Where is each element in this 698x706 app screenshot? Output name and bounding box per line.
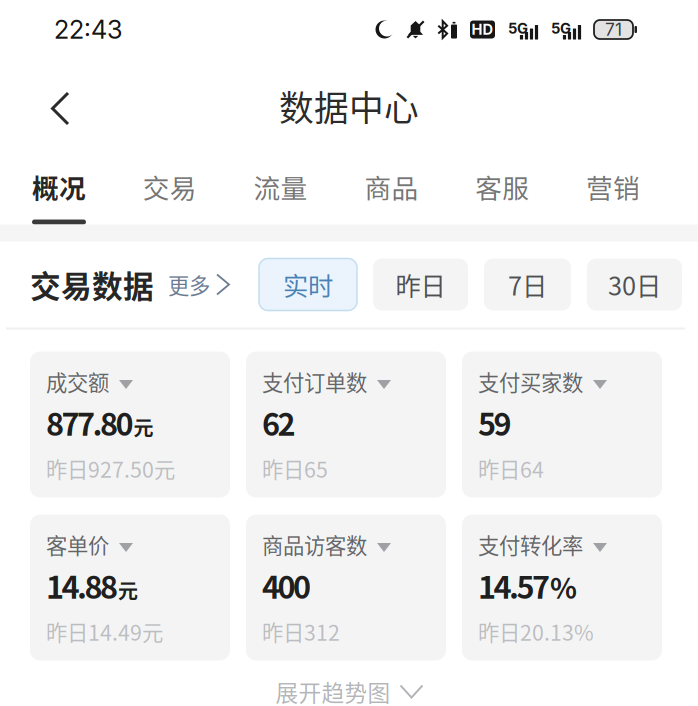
button[interactable]: 客服	[475, 147, 529, 224]
button[interactable]: 30日	[587, 258, 682, 310]
staticText: 商品访客数	[262, 529, 367, 560]
staticText: 昨日65	[262, 453, 328, 484]
button[interactable]: 客单价	[30, 514, 230, 660]
staticText: 14.88	[46, 563, 118, 608]
button[interactable]: 营销	[586, 147, 640, 224]
staticText: 877.80	[46, 400, 133, 445]
staticText: 昨日14.49元	[46, 616, 163, 647]
staticText: 昨日	[395, 266, 445, 303]
staticText: 交易数据	[30, 262, 154, 307]
staticText: 商品	[364, 167, 418, 206]
staticText: 成交额	[46, 366, 109, 397]
button[interactable]: 支付订单数	[246, 351, 446, 497]
staticText: 昨日20.13%	[478, 616, 594, 647]
staticText: 展开趋势图	[275, 675, 390, 706]
staticText: 数据中心	[279, 81, 419, 131]
button[interactable]: 流量	[254, 147, 308, 224]
staticText: 昨日312	[262, 616, 340, 647]
staticText: 支付转化率	[478, 529, 583, 560]
staticText: 营销	[586, 167, 640, 206]
button[interactable]: 更多	[154, 269, 229, 300]
button[interactable]: 交易	[143, 147, 197, 224]
staticText: 客单价	[46, 529, 109, 560]
button[interactable]: 支付买家数	[462, 351, 662, 497]
staticText: 元	[133, 413, 153, 442]
staticText: 昨日927.50元	[46, 453, 175, 484]
staticText: 62	[262, 400, 295, 445]
staticText: 流量	[254, 167, 308, 206]
staticText: %	[550, 566, 577, 607]
staticText: HD	[471, 21, 493, 38]
button[interactable]: 概况	[32, 147, 86, 224]
button[interactable]: 展开趋势图	[275, 676, 422, 706]
button[interactable]: 实时	[259, 258, 357, 310]
staticText: 客服	[475, 167, 529, 206]
staticText: 概况	[32, 167, 86, 206]
button[interactable]: 商品访客数	[246, 514, 446, 660]
staticText: 更多	[168, 269, 210, 300]
button[interactable]: 支付转化率	[462, 514, 662, 660]
staticText: 22:43	[54, 14, 123, 45]
button[interactable]: 商品	[364, 147, 418, 224]
staticText: 元	[118, 576, 138, 605]
button[interactable]: 成交额	[30, 351, 230, 497]
staticText: 30日	[608, 266, 661, 303]
staticText: 59	[478, 400, 511, 445]
button[interactable]: 7日	[484, 258, 571, 310]
staticText: 昨日64	[478, 453, 544, 484]
staticText: 400	[262, 563, 311, 608]
staticText: 71	[605, 19, 622, 40]
staticText: 实时	[283, 266, 333, 303]
staticText: 5G	[551, 19, 571, 37]
staticText: 5G	[508, 19, 528, 37]
staticText: 支付买家数	[478, 366, 583, 397]
staticText: 7日	[508, 266, 547, 303]
staticText: 14.57	[478, 563, 550, 608]
button[interactable]: 昨日	[373, 258, 468, 310]
staticText: 交易	[143, 167, 197, 206]
button[interactable]: Back	[0, 59, 78, 147]
staticText: 支付订单数	[262, 366, 367, 397]
